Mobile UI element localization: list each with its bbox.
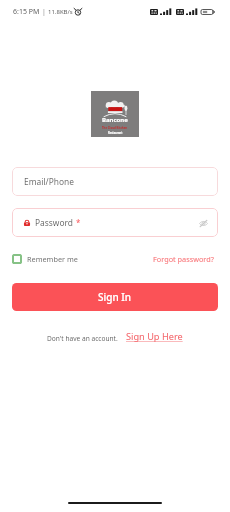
staticText: Remember me: [27, 254, 78, 264]
staticText: 11.8KB/s: [48, 8, 73, 16]
button[interactable]: Sign Up Here: [126, 330, 183, 343]
button[interactable]: Forgot password?: [153, 254, 218, 264]
staticText: Don't have an account.: [47, 334, 118, 343]
button[interactable]: Remember me: [12, 254, 78, 264]
staticText: The Cloud Kitchen: [102, 126, 128, 130]
button[interactable]: Show password: [196, 216, 210, 230]
staticText: *: [76, 217, 81, 228]
staticText: Sign In: [98, 290, 132, 304]
staticText: 6:15 PM: [13, 7, 40, 17]
staticText: Password: [35, 217, 76, 228]
staticText: Restaurant: [108, 131, 123, 135]
button[interactable]: Sign In: [12, 283, 218, 311]
button[interactable]: Password: [12, 208, 218, 237]
button[interactable]: Email/Phone: [12, 167, 218, 196]
staticText: |: [42, 7, 46, 17]
staticText: Email/Phone: [24, 176, 74, 187]
staticText: Bancone: [102, 116, 128, 124]
